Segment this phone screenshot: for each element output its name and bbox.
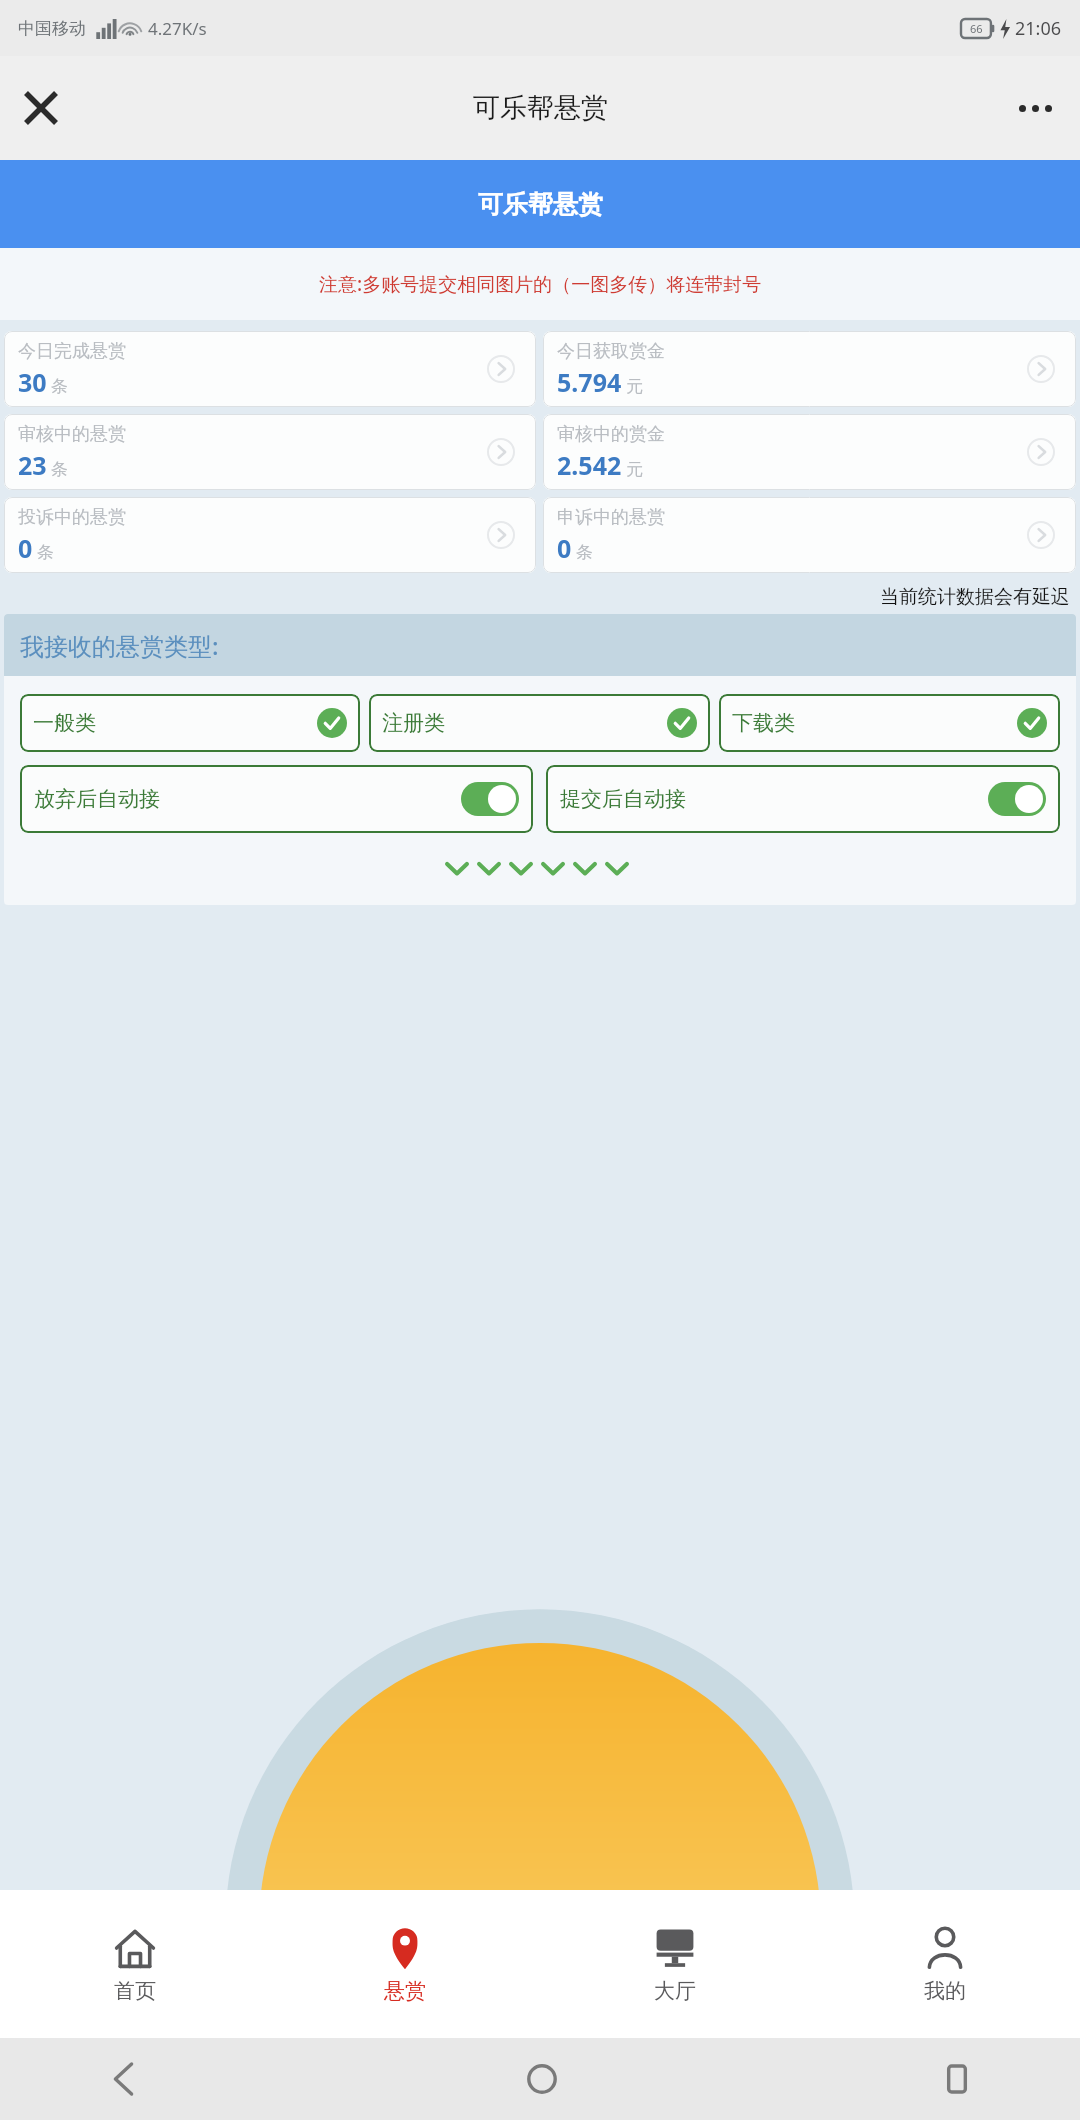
staticText: 条: [37, 542, 54, 563]
staticText: 申诉中的悬赏: [557, 506, 665, 529]
staticText: 今日获取赏金: [557, 340, 665, 363]
staticText: 元: [626, 459, 643, 480]
button[interactable]: 下载类: [719, 694, 1060, 752]
staticText: 首页: [114, 1978, 156, 2004]
staticText: 悬赏: [384, 1978, 426, 2004]
button[interactable]: 悬赏: [270, 1890, 540, 2038]
button[interactable]: 投诉中的悬赏: [4, 497, 536, 573]
staticText: 一般类: [33, 710, 96, 736]
button[interactable]: 大厅: [540, 1890, 810, 2038]
staticText: 大厅: [654, 1978, 696, 2004]
staticText: 23: [18, 448, 47, 482]
button[interactable]: 我的: [810, 1890, 1080, 2038]
staticText: 条: [51, 376, 68, 397]
staticText: 提交后自动接: [560, 786, 686, 812]
staticText: 审核中的赏金: [557, 423, 665, 446]
button[interactable]: 今日获取赏金: [543, 331, 1076, 407]
button[interactable]: Close: [10, 77, 72, 139]
staticText: 可乐帮悬赏: [473, 91, 608, 125]
staticText: 2.542: [557, 448, 622, 482]
staticText: 中国移动: [18, 18, 86, 39]
staticText: 30: [18, 365, 47, 399]
staticText: 投诉中的悬赏: [18, 506, 126, 529]
staticText: 4.27K/s: [148, 17, 207, 40]
button[interactable]: 一般类: [20, 694, 360, 752]
button[interactable]: 今日完成悬赏: [4, 331, 536, 407]
staticText: 21:06: [1015, 16, 1062, 41]
staticText: 我的: [924, 1978, 966, 2004]
button[interactable]: 审核中的赏金: [543, 414, 1076, 490]
staticText: 0: [18, 531, 33, 565]
staticText: 审核中的悬赏: [18, 423, 126, 446]
staticText: 元: [626, 376, 643, 397]
staticText: 今日完成悬赏: [18, 340, 126, 363]
staticText: 条: [51, 459, 68, 480]
staticText: 条: [576, 542, 593, 563]
button[interactable]: 提交后自动接: [546, 765, 1060, 833]
staticText: 放弃后自动接: [34, 786, 160, 812]
staticText: 5.794: [557, 365, 622, 399]
staticText: 当前统计数据会有延迟: [880, 585, 1070, 609]
staticText: 66: [970, 21, 983, 36]
button[interactable]: 首页: [0, 1890, 270, 2038]
staticText: 下载类: [732, 710, 795, 736]
button[interactable]: 审核中的悬赏: [4, 414, 536, 490]
staticText: 注意:多账号提交相同图片的（一图多传）将连带封号: [319, 271, 762, 297]
button[interactable]: 申诉中的悬赏: [543, 497, 1076, 573]
button[interactable]: More options: [1004, 77, 1066, 139]
staticText: 0: [557, 531, 572, 565]
button[interactable]: 放弃后自动接: [20, 765, 533, 833]
button[interactable]: 注册类: [369, 694, 710, 752]
staticText: 可乐帮悬赏: [478, 189, 603, 220]
staticText: 注册类: [382, 710, 445, 736]
staticText: 我接收的悬赏类型:: [20, 629, 219, 662]
